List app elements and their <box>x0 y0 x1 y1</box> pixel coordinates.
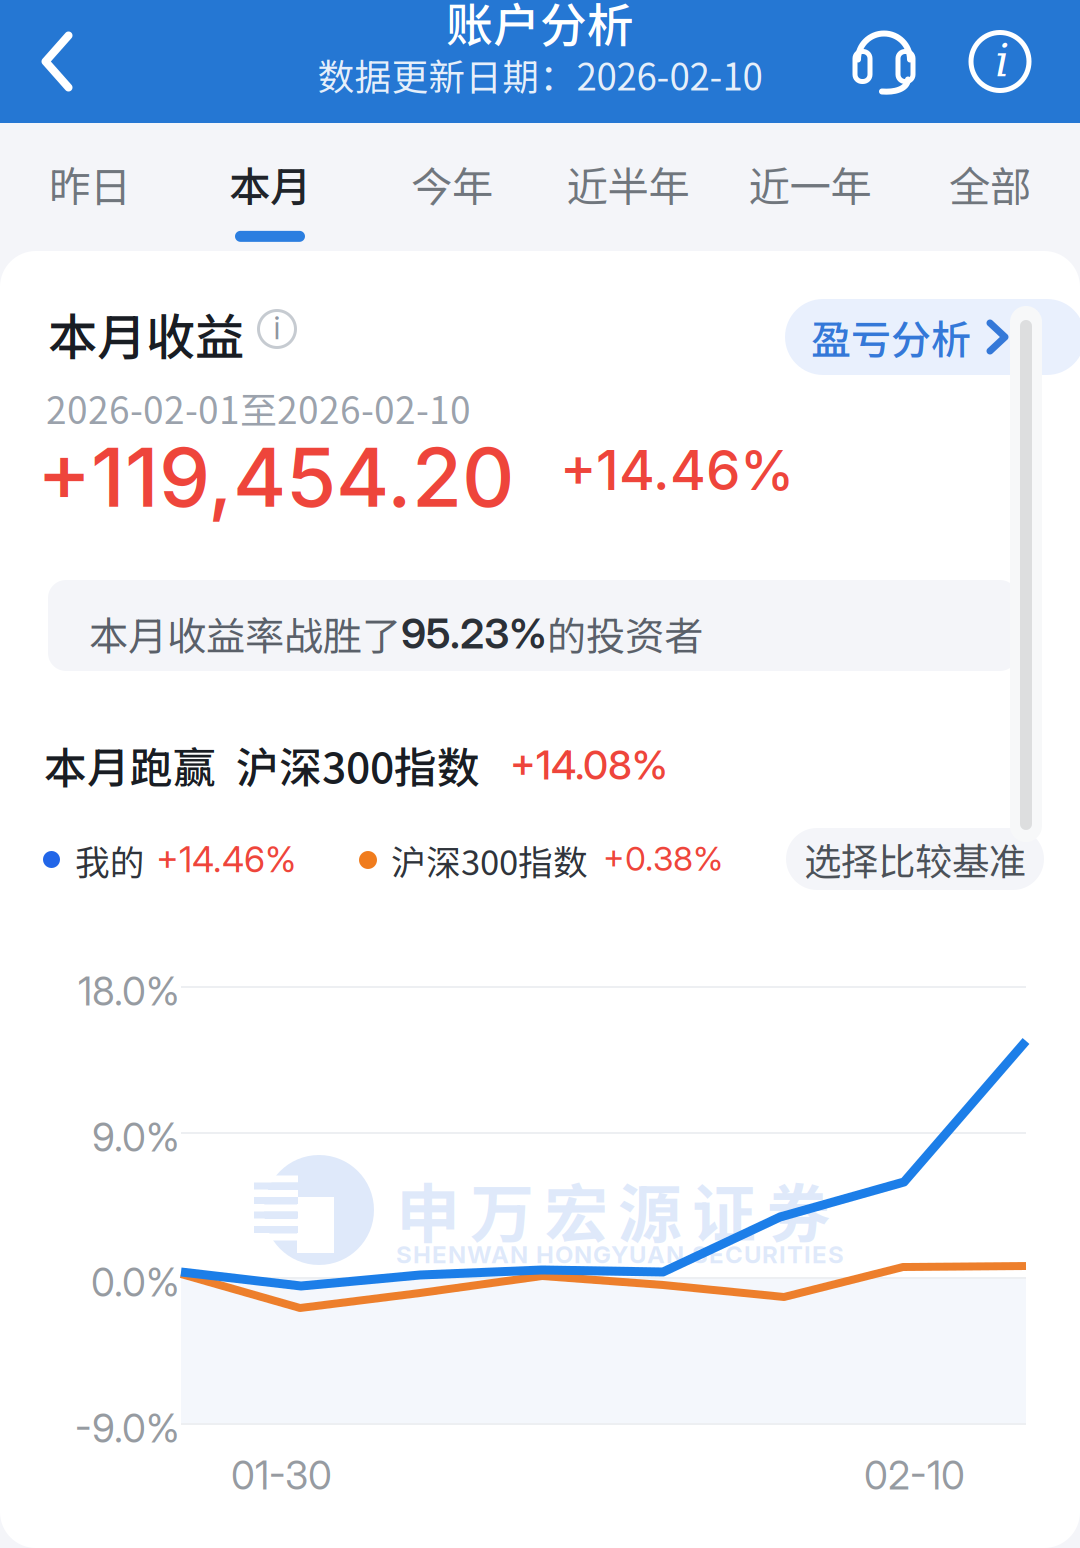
staticText: i <box>995 34 1009 87</box>
staticText: 95.23% <box>401 608 547 658</box>
button[interactable]: Back <box>0 0 115 123</box>
button[interactable]: Customer service <box>828 1 940 124</box>
staticText: 2026-02-01至2026-02-10 <box>46 381 471 435</box>
staticText: 选择比较基准 <box>804 832 1026 886</box>
staticText: i <box>273 309 280 346</box>
button[interactable]: 今年 <box>364 123 540 251</box>
staticText: 数据更新日期：2026-02-10 <box>317 48 762 101</box>
button[interactable]: 选择比较基准 <box>786 828 1044 890</box>
staticText: 本月 <box>229 154 311 214</box>
staticText: 今年 <box>411 154 493 214</box>
button[interactable]: 昨日 <box>2 123 178 251</box>
staticText: +119,454.20 <box>37 428 515 526</box>
staticText: -9.0% <box>75 1405 180 1452</box>
button[interactable]: 近一年 <box>722 123 898 251</box>
staticText: 申万宏源证券 <box>396 1163 830 1256</box>
button[interactable]: 本月 <box>182 123 358 251</box>
staticText: SHENWAN HONGYUAN SECURITIES <box>396 1240 844 1269</box>
staticText: 近一年 <box>748 154 871 214</box>
staticText: 盈亏分析 <box>811 308 971 366</box>
staticText: 的投资者 <box>547 605 703 662</box>
staticText: +14.08% <box>510 741 668 789</box>
staticText: 账户分析 <box>446 0 634 56</box>
staticText: 02-10 <box>864 1452 965 1499</box>
staticText: +14.46% <box>156 838 296 881</box>
staticText: +14.46% <box>560 437 794 503</box>
staticText: 昨日 <box>49 154 131 214</box>
staticText: 9.0% <box>92 1114 180 1161</box>
button[interactable]: Information <box>944 0 1056 123</box>
staticText: 近半年 <box>566 154 689 214</box>
staticText: 我的 <box>75 835 145 885</box>
staticText: 本月收益 <box>48 298 244 369</box>
staticText: 全部 <box>949 154 1031 214</box>
button[interactable]: 近半年 <box>540 123 716 251</box>
staticText: +0.38% <box>603 838 723 879</box>
staticText: 本月收益率战胜了 <box>89 605 401 662</box>
staticText: 沪深300指数 <box>391 835 588 885</box>
button[interactable]: 全部 <box>902 123 1078 251</box>
staticText: 本月跑赢 沪深300指数 <box>44 734 480 796</box>
staticText: 01-30 <box>231 1452 332 1499</box>
staticText: 0.0% <box>91 1259 180 1306</box>
button[interactable]: 盈亏分析 <box>785 299 1080 375</box>
staticText: 18.0% <box>78 968 180 1015</box>
